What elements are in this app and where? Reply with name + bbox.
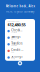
staticText: $12,480.55 bbox=[7, 22, 25, 27]
staticText: Pending bbox=[11, 45, 17, 46]
staticText: Welcome back, Alex bbox=[5, 4, 34, 8]
staticText: Checking bbox=[11, 28, 23, 32]
staticText: Prefs bbox=[11, 58, 15, 60]
staticText: Settings bbox=[11, 55, 22, 58]
staticText: Credit card bbox=[11, 48, 23, 52]
staticText: TOTAL BALANCE bbox=[7, 21, 19, 22]
staticText: Transfers bbox=[11, 42, 22, 45]
staticText: Here is your summary bbox=[6, 10, 34, 13]
staticText: Available bbox=[11, 31, 17, 33]
staticText: Savings bbox=[11, 35, 20, 38]
staticText: Interest bbox=[11, 38, 16, 40]
staticText: Due bbox=[11, 51, 14, 53]
